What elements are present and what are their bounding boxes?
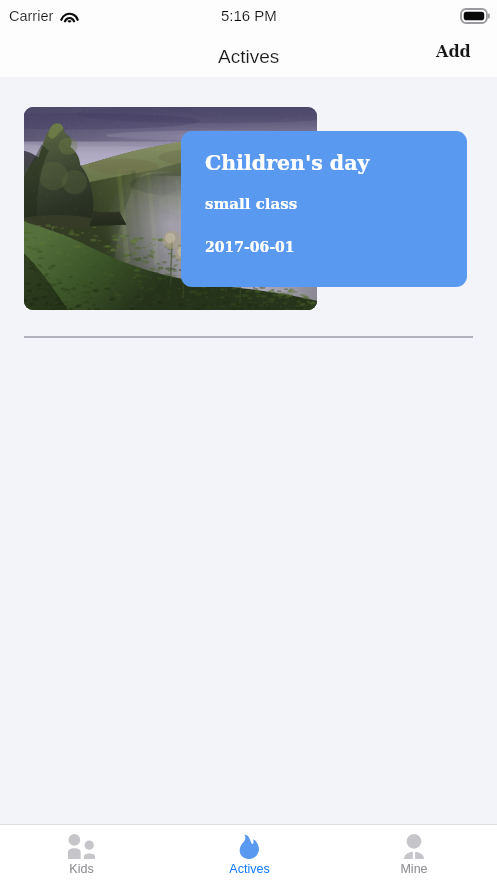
button[interactable]: Actives (184, 825, 314, 876)
staticText: Kids (69, 862, 94, 876)
button[interactable]: Kids (16, 825, 146, 876)
button[interactable] (24, 107, 317, 310)
button[interactable]: Mine (349, 825, 479, 876)
button[interactable]: Add (410, 30, 497, 73)
staticText: small class (205, 195, 298, 213)
staticText: Add (436, 42, 471, 61)
staticText: Children's day (205, 151, 370, 175)
staticText: 5:16 PM (221, 7, 277, 24)
staticText: 2017-06-01 (205, 239, 295, 255)
staticText: Actives (218, 46, 280, 67)
staticText: Actives (229, 862, 270, 876)
staticText: Mine (400, 862, 428, 876)
staticText: Carrier (9, 8, 54, 24)
button[interactable]: Children's day (181, 131, 467, 287)
